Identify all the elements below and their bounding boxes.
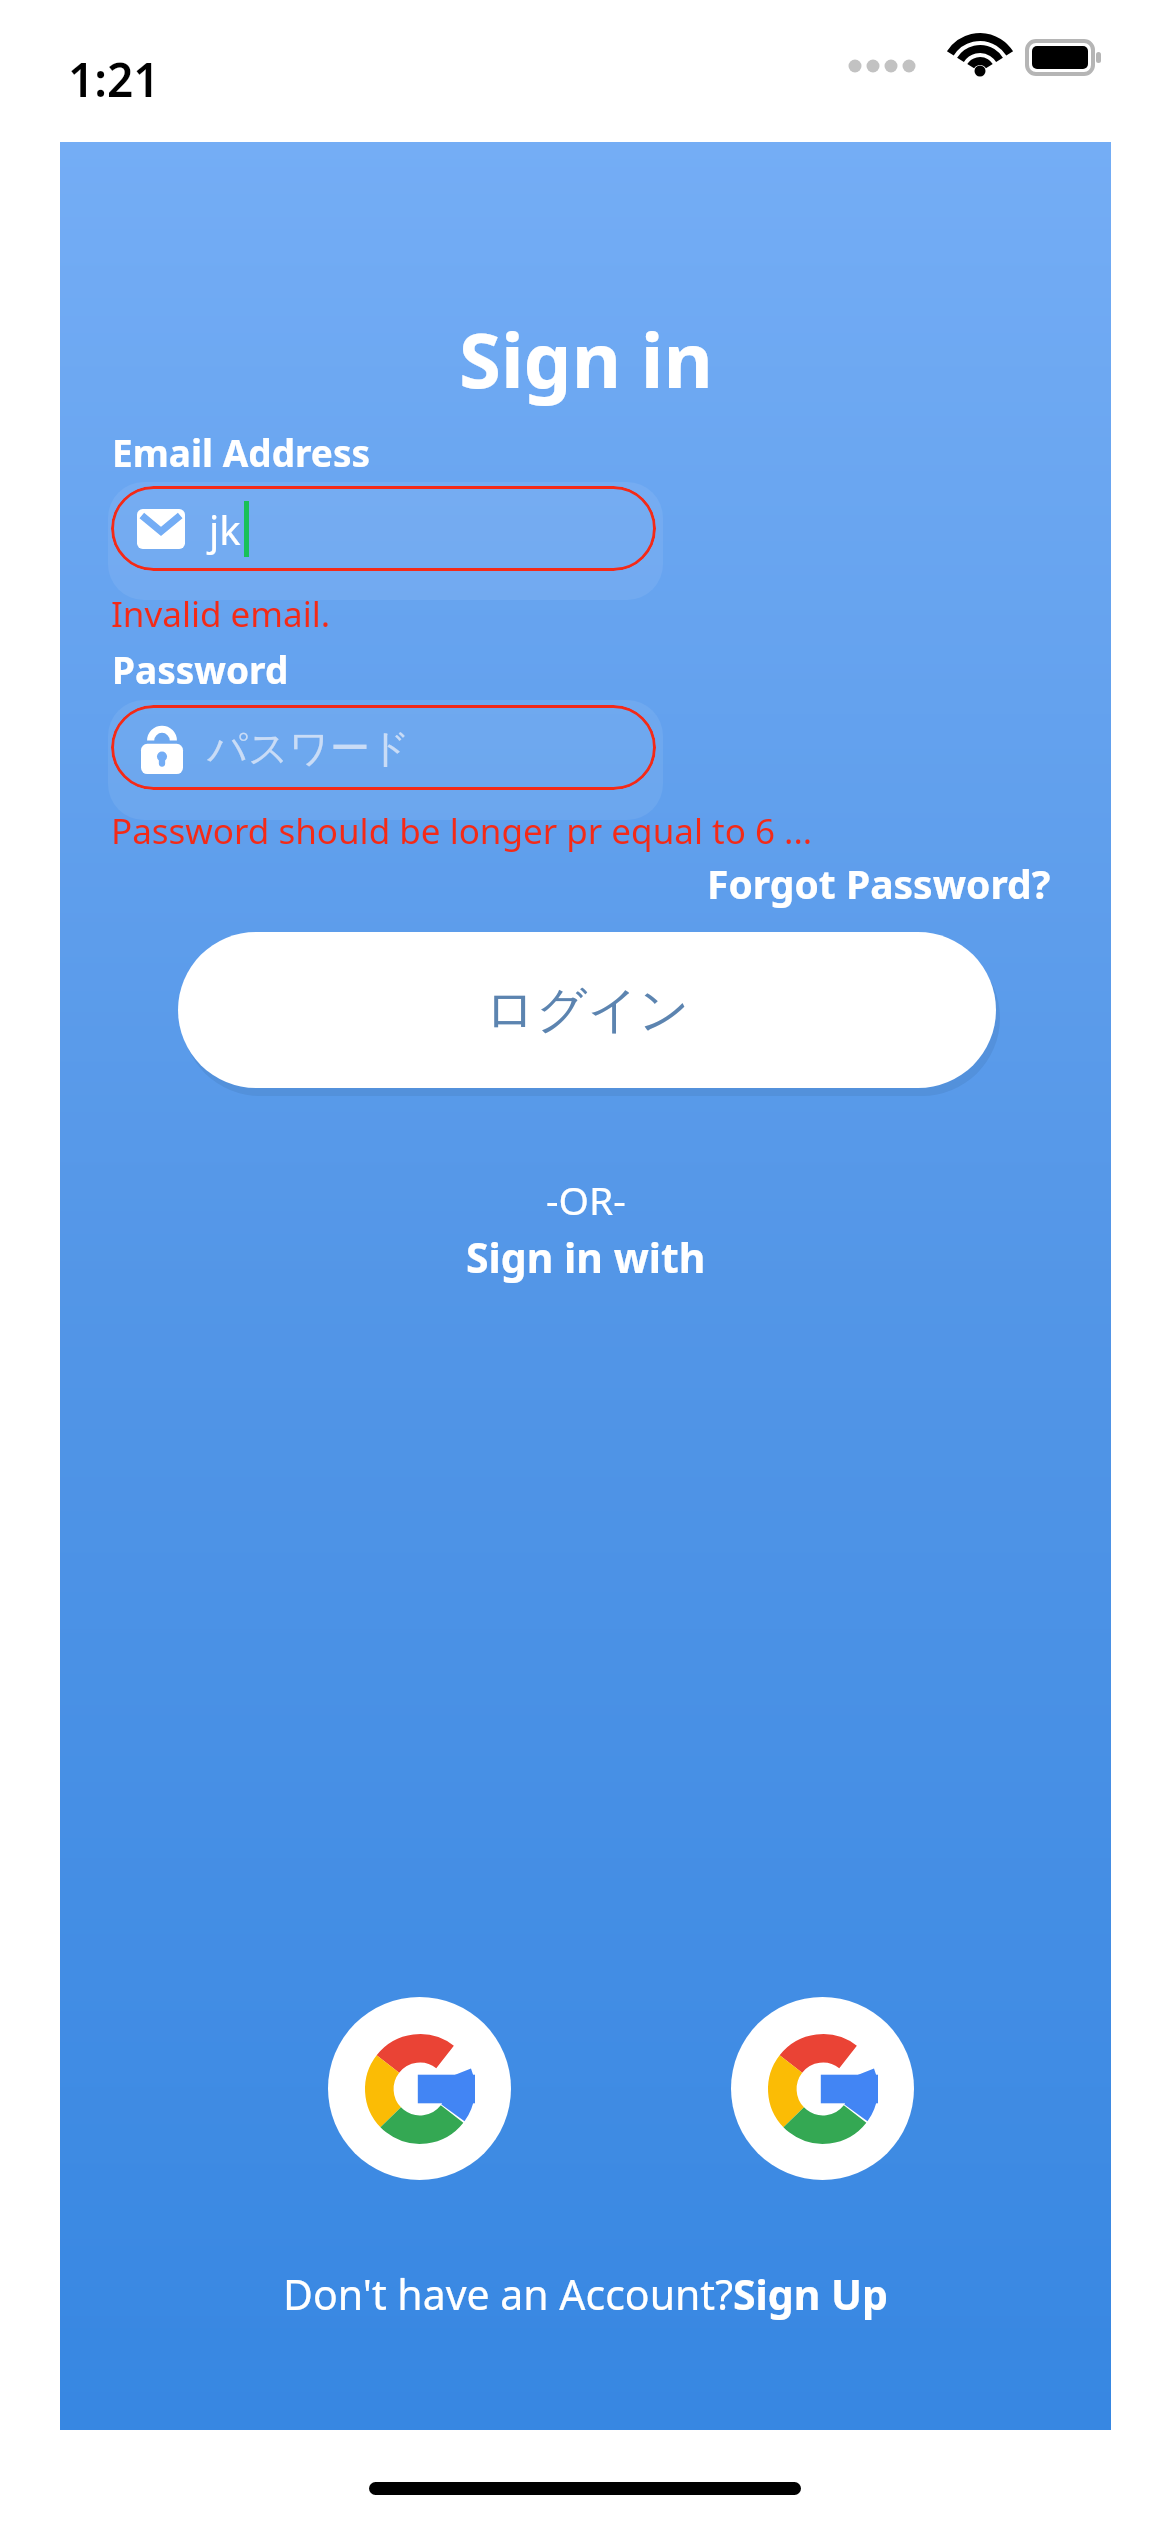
button[interactable]: Sign in with Google (second account) [731,1997,914,2180]
button[interactable]: ログイン [178,932,996,1088]
staticText: パスワード [207,723,411,773]
staticText: Sign in with [466,1229,706,1285]
button[interactable]: パスワード [111,705,656,790]
staticText: Forgot Password? [707,857,1051,910]
staticText: 1:21 [68,48,160,111]
staticText: Email Address [112,427,371,477]
staticText: Sign in [459,307,713,411]
button[interactable]: jk [111,486,656,571]
button[interactable]: Forgot Password? [703,847,1055,920]
staticText: Password should be longer pr equal to 6 … [111,807,813,855]
button[interactable]: Sign in with Google [328,1997,511,2180]
staticText: jk [209,502,241,556]
staticText: Invalid email. [111,590,331,638]
staticText: -OR- [546,1173,626,1226]
staticText: Don't have an Account? [283,2266,733,2322]
staticText: ログイン [485,979,690,1042]
staticText: Sign Up [733,2266,888,2322]
button[interactable]: Don't have an Account? [275,2260,896,2328]
staticText: Password [112,644,289,694]
